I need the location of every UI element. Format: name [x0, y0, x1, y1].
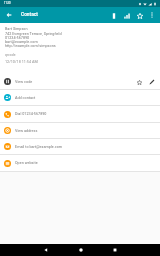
button[interactable]: Statistics [120, 9, 133, 22]
staticText: 11:30 [4, 2, 11, 5]
staticText: Add contact [15, 96, 36, 100]
staticText: qrcode [5, 53, 16, 57]
button[interactable]: View code [0, 74, 160, 89]
staticText: View address [15, 129, 38, 133]
staticText: Email to bart@example.com [15, 145, 63, 149]
button[interactable]: Back [37, 244, 54, 256]
button[interactable]: Delete [107, 9, 120, 22]
button[interactable]: Email to bart@example.com [0, 139, 160, 154]
staticText: Dial 01234-567890 [15, 112, 47, 116]
staticText: Contact [21, 12, 38, 18]
button[interactable]: Home [72, 244, 89, 256]
button[interactable]: Dial 01234-567890 [0, 106, 160, 122]
staticText: Bart Simpson 742 Evergreen Terrace, Spri… [5, 27, 62, 47]
button[interactable]: Recents [106, 244, 123, 256]
staticText: 12/10/18 11:54 AM [5, 60, 38, 64]
button[interactable]: Favorite [133, 76, 145, 88]
button[interactable]: Back [0, 7, 18, 23]
button[interactable]: More options [146, 9, 158, 21]
button[interactable]: Add contact [0, 90, 160, 105]
button[interactable]: Edit [145, 75, 158, 88]
button[interactable]: Favorite [133, 9, 146, 22]
button[interactable]: Open website [0, 155, 160, 171]
button[interactable]: View address [0, 123, 160, 138]
staticText: View code [15, 80, 133, 84]
staticText: Open website [15, 161, 38, 165]
